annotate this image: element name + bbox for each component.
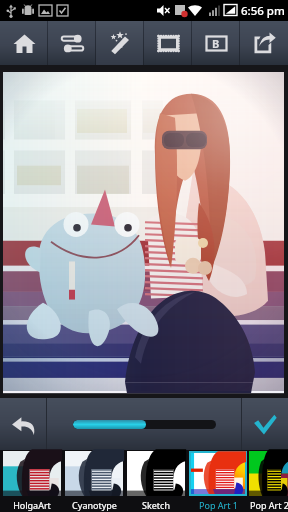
button[interactable]: Pop Art 2 xyxy=(249,450,288,512)
staticText: HolgaArt xyxy=(13,499,51,511)
staticText: Pop Art 1 xyxy=(199,499,238,511)
button[interactable]: Intensity slider xyxy=(73,420,216,429)
button[interactable]: Undo xyxy=(0,398,47,450)
staticText: B xyxy=(212,36,220,51)
button[interactable]: Pop Art 1 xyxy=(187,450,249,512)
button[interactable]: Adjust xyxy=(48,21,96,65)
button[interactable]: Share xyxy=(240,21,288,65)
button[interactable]: Home xyxy=(0,21,48,65)
button[interactable]: HolgaArt xyxy=(1,450,63,512)
staticText: Sketch xyxy=(142,499,170,511)
button[interactable]: Frames xyxy=(144,21,192,65)
button[interactable]: Borders xyxy=(192,21,240,65)
staticText: Cyanotype xyxy=(72,499,117,511)
button[interactable]: Sketch xyxy=(125,450,187,512)
button[interactable]: Apply xyxy=(242,398,288,450)
button[interactable]: Cyanotype xyxy=(63,450,125,512)
button[interactable]: Effects xyxy=(96,21,144,65)
staticText: Pop Art 2 xyxy=(250,499,288,511)
staticText: 6:56 pm xyxy=(241,3,285,19)
